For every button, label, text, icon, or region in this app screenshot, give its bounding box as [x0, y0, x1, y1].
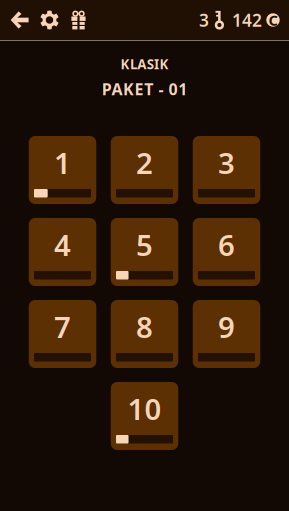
button[interactable]: Settings [35, 0, 64, 40]
staticText: 3 [199, 8, 209, 31]
button[interactable]: 10 [111, 382, 178, 450]
staticText: 10 [127, 389, 161, 428]
button[interactable]: 6 [193, 218, 260, 286]
button[interactable]: 4 [29, 218, 96, 286]
button[interactable]: Keys: 3 [173, 0, 224, 40]
staticText: 5 [136, 225, 153, 264]
button[interactable]: 3 [193, 136, 260, 204]
button[interactable]: 7 [29, 300, 96, 368]
button[interactable]: Back [5, 0, 34, 40]
button[interactable]: 8 [111, 300, 178, 368]
button[interactable]: 1 [29, 136, 96, 204]
staticText: 4 [54, 225, 71, 264]
button[interactable]: Gifts [64, 0, 93, 40]
staticText: 7 [54, 307, 71, 346]
staticText: 9 [218, 307, 235, 346]
staticText: 2 [136, 143, 153, 182]
button[interactable]: 5 [111, 218, 178, 286]
staticText: 1 [54, 143, 71, 182]
button[interactable]: 2 [111, 136, 178, 204]
staticText: KLASIK [120, 55, 168, 73]
staticText: C [268, 10, 277, 30]
staticText: 8 [136, 307, 153, 346]
staticText: 6 [218, 225, 235, 264]
button[interactable]: 9 [193, 300, 260, 368]
staticText: 142 [232, 8, 262, 31]
button[interactable]: Coins: 142 [232, 0, 280, 40]
staticText: 3 [218, 143, 235, 182]
staticText: PAKET - 01 [102, 78, 187, 100]
